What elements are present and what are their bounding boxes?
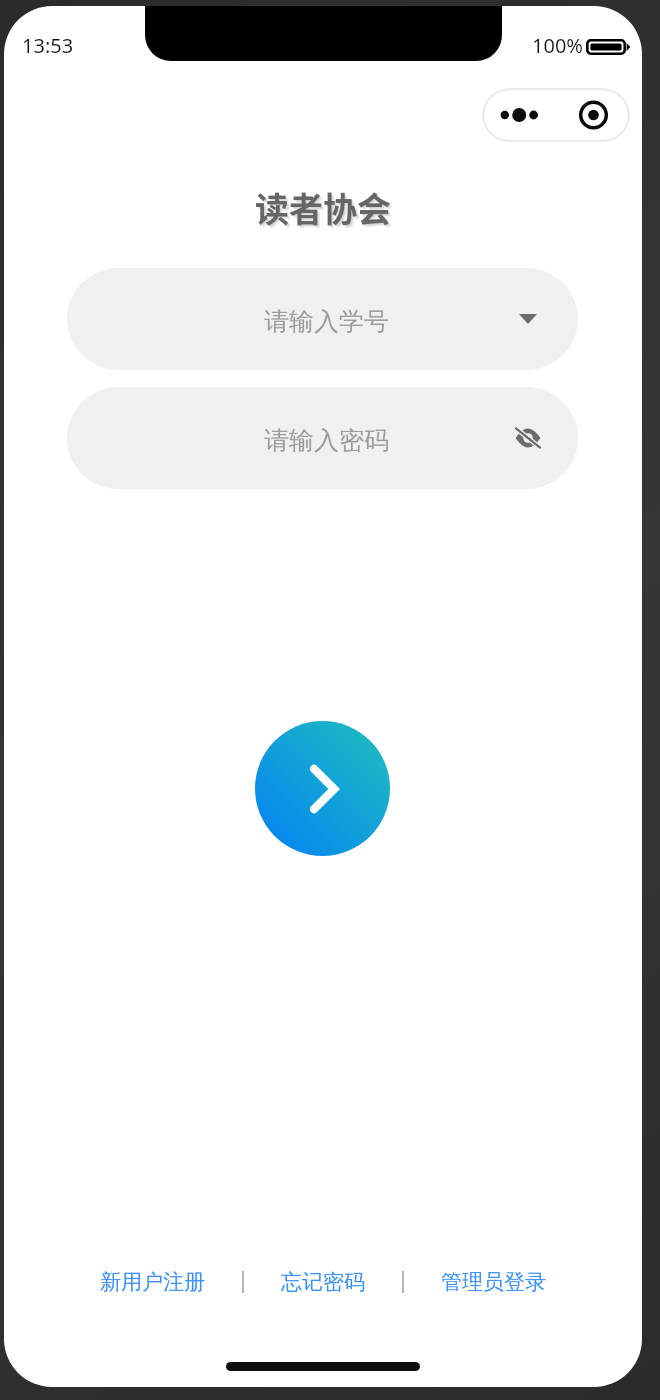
staticText: 读者协会 xyxy=(258,186,394,235)
button[interactable]: 请输入学号 xyxy=(67,268,578,370)
button[interactable]: 管理员登录 xyxy=(438,1263,549,1301)
staticText: 读者协会 xyxy=(256,184,392,233)
button[interactable]: Log in xyxy=(255,721,390,856)
staticText: 管理员登录 xyxy=(441,1269,546,1295)
button[interactable]: 忘记密码 xyxy=(278,1263,368,1301)
staticText: 请输入密码 xyxy=(264,425,389,456)
button[interactable]: Show password xyxy=(508,418,548,458)
staticText: 请输入学号 xyxy=(264,306,389,337)
button[interactable]: 新用户注册 xyxy=(97,1263,208,1301)
button[interactable]: 请输入密码 xyxy=(67,387,578,489)
staticText: 忘记密码 xyxy=(281,1269,365,1295)
button[interactable]: More options and close xyxy=(482,88,630,142)
staticText: 新用户注册 xyxy=(100,1269,205,1295)
staticText: 读者协会 xyxy=(255,183,391,232)
staticText: 100% xyxy=(532,32,583,59)
staticText: 读者协会 xyxy=(257,185,393,234)
staticText: 13:53 xyxy=(22,32,74,59)
